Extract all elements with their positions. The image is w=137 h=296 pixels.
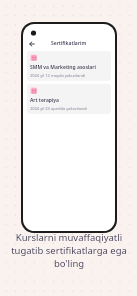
staticText: Sertifikatlarim bbox=[51, 40, 87, 47]
button[interactable]: Art terapiya bbox=[27, 84, 111, 114]
staticText: SMM va Marketing asoslari bbox=[30, 64, 96, 71]
staticText: Art terapiya bbox=[30, 97, 60, 104]
staticText: 2024 yil 23 aprelda yakunlandi bbox=[30, 106, 87, 111]
button[interactable]: Back bbox=[27, 39, 37, 49]
button[interactable]: SMM va Marketing asoslari bbox=[27, 51, 111, 81]
staticText: 2024 yil 12 mayda yakunlandi bbox=[30, 73, 86, 78]
staticText: Kurslarni muvaffaqiyatli tugatib sertifi… bbox=[11, 231, 127, 270]
